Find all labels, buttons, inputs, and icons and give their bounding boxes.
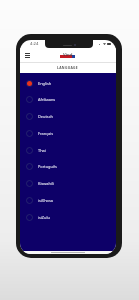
button[interactable]: Português — [20, 158, 116, 175]
button[interactable]: Français — [20, 125, 116, 142]
staticText: LANGUAGE — [57, 65, 79, 70]
button[interactable]: isiXhosa — [20, 192, 116, 209]
staticText: Português — [38, 164, 57, 169]
staticText: Deutsch — [38, 114, 53, 119]
button[interactable]: Kiswahili — [20, 175, 116, 192]
staticText: Afrikaans — [38, 97, 56, 102]
staticText: Français — [38, 131, 54, 136]
button[interactable]: Brand logo — [60, 51, 75, 61]
staticText: Thai — [38, 148, 46, 153]
staticText: isiXhosa — [38, 198, 53, 203]
staticText: English — [38, 81, 52, 86]
button[interactable]: isiZulu — [20, 209, 116, 226]
button[interactable]: Thai — [20, 142, 116, 159]
button[interactable]: English — [20, 75, 116, 92]
button[interactable]: Deutsch — [20, 108, 116, 125]
staticText: Vind — [63, 52, 73, 58]
staticText: Kiswahili — [38, 181, 54, 186]
button[interactable]: Open navigation menu — [25, 53, 30, 58]
button[interactable]: Afrikaans — [20, 91, 116, 108]
staticText: isiZulu — [38, 215, 50, 220]
staticText: 4:24 — [30, 41, 39, 47]
